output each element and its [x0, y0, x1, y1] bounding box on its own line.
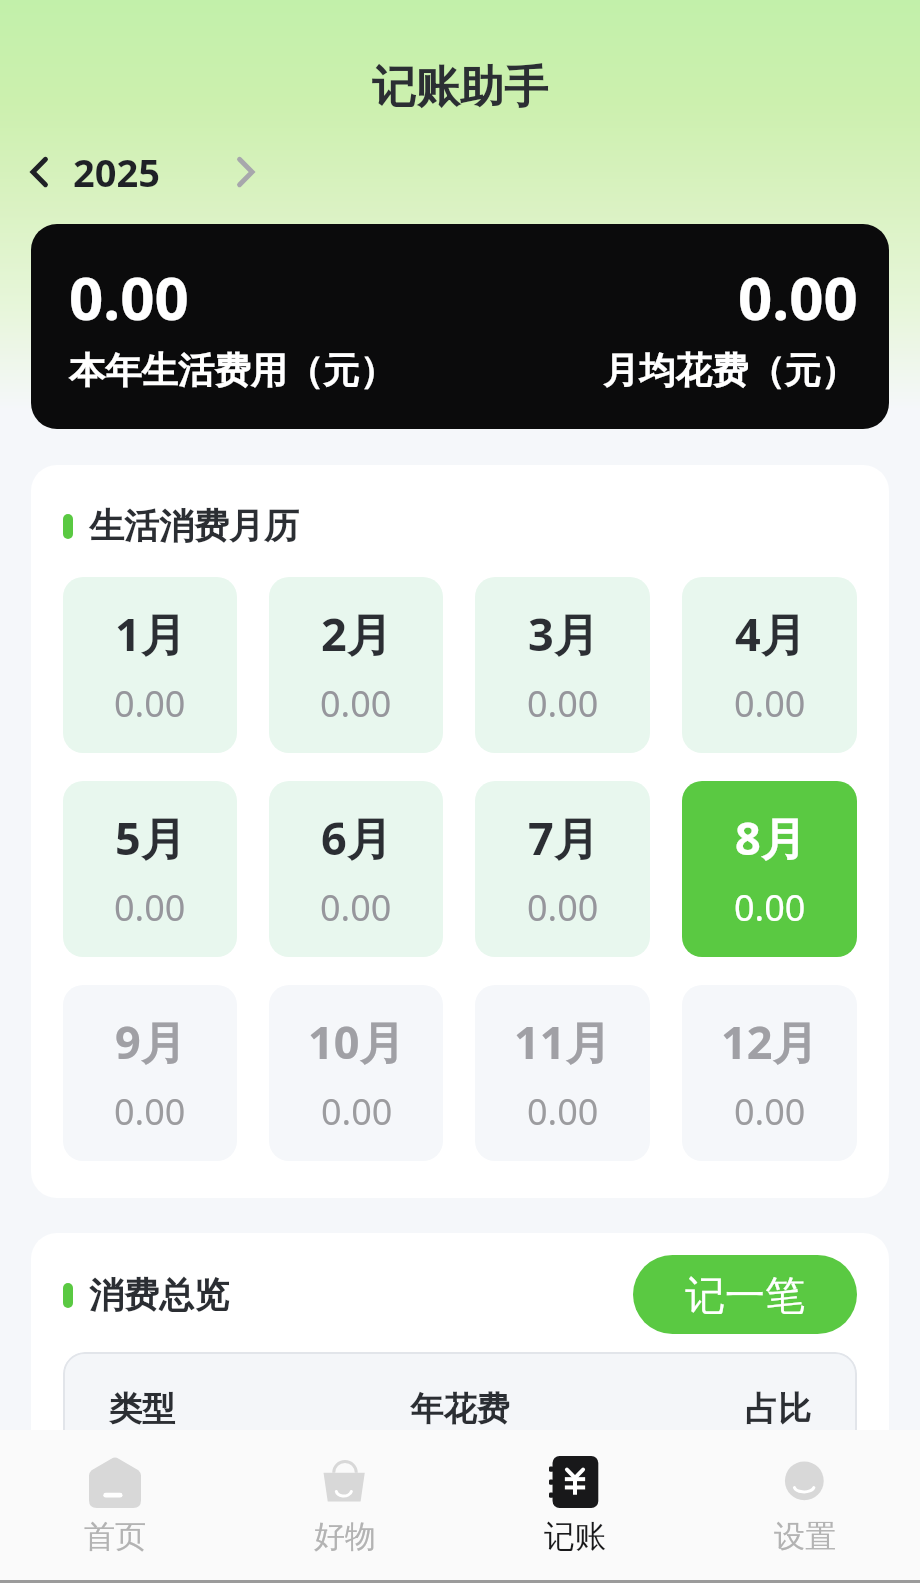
staticText: 0.00 — [527, 1087, 599, 1136]
staticText: 0.00 — [738, 256, 858, 338]
staticText: 0.00 — [320, 883, 392, 932]
staticText: 0.00 — [734, 679, 806, 728]
staticText: 记账 — [544, 1517, 606, 1556]
button[interactable]: Next year — [224, 150, 268, 194]
staticText: 0.00 — [527, 679, 599, 728]
staticText: 年花费 — [343, 1388, 577, 1430]
button[interactable]: 9月 — [63, 985, 237, 1161]
staticText: 2025 — [73, 146, 160, 198]
button[interactable]: 4月 — [682, 577, 857, 753]
staticText: 0.00 — [734, 1087, 806, 1136]
staticText: 好物 — [314, 1517, 376, 1556]
staticText: 记一笔 — [685, 1270, 805, 1320]
staticText: 0.00 — [114, 883, 186, 932]
staticText: 0.00 — [320, 679, 392, 728]
staticText: 记账助手 — [372, 60, 548, 115]
button[interactable]: 设置 — [690, 1430, 920, 1583]
staticText: 月均花费（元） — [603, 348, 858, 394]
staticText: 10月 — [308, 1011, 405, 1072]
staticText: 0.00 — [734, 883, 806, 932]
button[interactable]: 1月 — [63, 577, 237, 753]
button[interactable]: 2月 — [269, 577, 443, 753]
staticText: 6月 — [321, 807, 392, 868]
staticText: 3月 — [528, 603, 599, 664]
staticText: 7月 — [528, 807, 599, 868]
button[interactable]: 6月 — [269, 781, 443, 957]
staticText: 生活消费月历 — [89, 504, 299, 548]
button[interactable]: Previous year — [17, 150, 61, 194]
staticText: 0.00 — [69, 256, 189, 338]
staticText: 首页 — [84, 1517, 146, 1556]
staticText: 1月 — [115, 603, 186, 664]
staticText: 9月 — [115, 1011, 186, 1072]
button[interactable]: 好物 — [230, 1430, 460, 1583]
button[interactable]: 3月 — [475, 577, 650, 753]
staticText: 12月 — [721, 1011, 818, 1072]
button[interactable]: 7月 — [475, 781, 650, 957]
staticText: 0.00 — [527, 883, 599, 932]
button[interactable]: 12月 — [682, 985, 857, 1161]
button[interactable]: 记账 — [460, 1430, 690, 1583]
staticText: 2月 — [321, 603, 392, 664]
button[interactable]: 8月 — [682, 781, 857, 957]
staticText: 4月 — [735, 603, 806, 664]
staticText: 5月 — [115, 807, 186, 868]
button[interactable]: 11月 — [475, 985, 650, 1161]
staticText: 占比 — [577, 1388, 811, 1430]
button[interactable]: 记一笔 — [633, 1255, 857, 1334]
button[interactable]: 5月 — [63, 781, 237, 957]
staticText: 设置 — [774, 1517, 836, 1556]
staticText: 本年生活费用（元） — [69, 348, 396, 394]
staticText: 消费总览 — [89, 1273, 229, 1317]
staticText: 0.00 — [321, 1087, 393, 1136]
staticText: 8月 — [735, 807, 806, 868]
staticText: 11月 — [514, 1011, 611, 1072]
staticText: 0.00 — [114, 679, 186, 728]
staticText: 0.00 — [114, 1087, 186, 1136]
button[interactable]: 10月 — [269, 985, 443, 1161]
staticText: 类型 — [109, 1388, 343, 1430]
button[interactable]: 0.00 — [31, 224, 889, 429]
button[interactable]: 首页 — [0, 1430, 230, 1583]
